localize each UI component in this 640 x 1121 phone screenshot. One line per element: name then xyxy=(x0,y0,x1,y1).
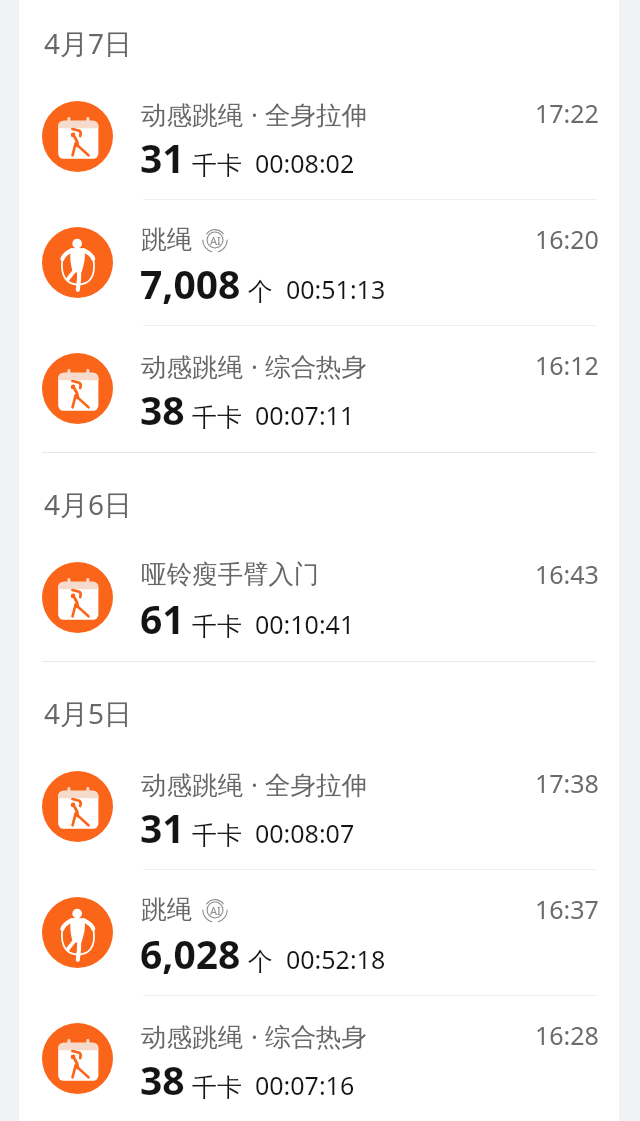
staticText: 17:38 xyxy=(535,766,599,800)
staticText: 4月7日 xyxy=(44,24,133,62)
button[interactable]: Course workout xyxy=(19,326,619,452)
staticText: 个 xyxy=(248,276,273,307)
staticText: 动感跳绳 xyxy=(141,351,243,383)
staticText: 38 xyxy=(140,383,185,436)
staticText: 千卡 xyxy=(192,1072,242,1103)
staticText: 动感跳绳 xyxy=(141,99,243,131)
other: Jump rope workout xyxy=(42,897,113,968)
staticText: 跳绳 xyxy=(141,223,192,255)
staticText: 00:51:13 xyxy=(286,272,386,306)
staticText: 00:07:16 xyxy=(255,1068,355,1102)
other: Course workout xyxy=(42,1023,113,1094)
staticText: · xyxy=(251,97,258,132)
staticText: 千卡 xyxy=(192,611,242,642)
button[interactable]: Course workout xyxy=(19,535,619,661)
staticText: 全身拉伸 xyxy=(265,99,367,131)
staticText: AI xyxy=(210,233,221,248)
staticText: 00:10:41 xyxy=(255,607,355,641)
staticText: AI xyxy=(210,903,221,918)
staticText: 61 xyxy=(140,592,185,645)
staticText: 个 xyxy=(248,946,273,977)
staticText: 16:12 xyxy=(535,348,599,382)
staticText: 综合热身 xyxy=(265,351,367,383)
staticText: · xyxy=(251,1019,258,1054)
staticText: 千卡 xyxy=(192,402,242,433)
staticText: 千卡 xyxy=(192,150,242,181)
staticText: 38 xyxy=(140,1053,185,1106)
staticText: 综合热身 xyxy=(265,1021,367,1053)
other: Course workout xyxy=(42,101,113,172)
staticText: · xyxy=(251,349,258,384)
staticText: 6,028 xyxy=(140,927,241,980)
staticText: 31 xyxy=(140,801,185,854)
other: Course workout xyxy=(42,771,113,842)
staticText: 动感跳绳 xyxy=(141,769,243,801)
staticText: 00:07:11 xyxy=(255,398,355,432)
staticText: 16:28 xyxy=(535,1018,599,1052)
staticText: 00:08:07 xyxy=(255,816,355,850)
button[interactable]: Course workout xyxy=(19,744,619,870)
button[interactable]: Course workout xyxy=(19,74,619,200)
other: Jump rope workout xyxy=(42,227,113,298)
button[interactable]: Course workout xyxy=(19,996,619,1112)
other: Course workout xyxy=(42,562,113,633)
other: Course workout xyxy=(42,353,113,424)
staticText: 00:08:02 xyxy=(255,146,355,180)
staticText: 千卡 xyxy=(192,820,242,851)
staticText: 哑铃瘦手臂入门 xyxy=(141,558,320,590)
staticText: 动感跳绳 xyxy=(141,1021,243,1053)
staticText: · xyxy=(251,767,258,802)
staticText: 跳绳 xyxy=(141,893,192,925)
button[interactable]: Jump rope workout xyxy=(19,200,619,326)
staticText: 16:43 xyxy=(535,557,599,591)
staticText: 16:20 xyxy=(535,222,599,256)
staticText: 16:37 xyxy=(535,892,599,926)
staticText: 7,008 xyxy=(140,257,241,310)
button[interactable]: Jump rope workout xyxy=(19,870,619,996)
staticText: 4月5日 xyxy=(44,694,133,732)
staticText: 00:52:18 xyxy=(286,942,386,976)
staticText: 31 xyxy=(140,131,185,184)
staticText: 全身拉伸 xyxy=(265,769,367,801)
staticText: 4月6日 xyxy=(44,485,133,523)
staticText: 17:22 xyxy=(535,96,599,130)
